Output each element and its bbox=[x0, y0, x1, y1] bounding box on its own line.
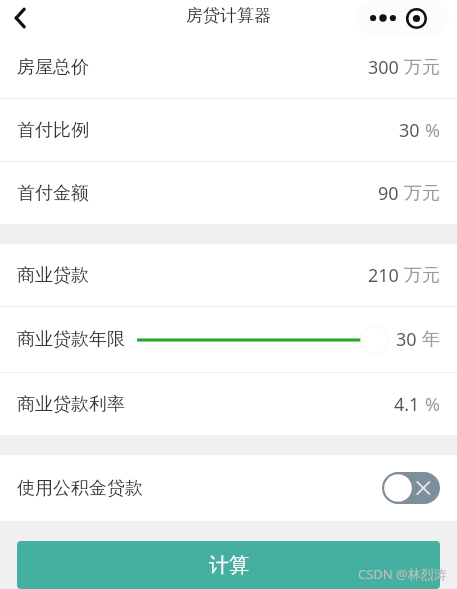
staticText: % bbox=[425, 118, 440, 143]
staticText: 210 bbox=[368, 263, 399, 288]
button[interactable]: 商业贷款利率 bbox=[0, 373, 457, 435]
staticText: % bbox=[425, 392, 440, 417]
button[interactable]: 计算 bbox=[17, 541, 440, 589]
staticText: 30 bbox=[396, 327, 417, 352]
button[interactable]: Close bbox=[406, 8, 427, 29]
staticText: 万元 bbox=[404, 264, 440, 287]
button[interactable]: More bbox=[368, 8, 398, 28]
staticText: 房屋总价 bbox=[17, 56, 89, 79]
button[interactable]: 商业贷款年限 bbox=[0, 307, 457, 372]
staticText: 首付金额 bbox=[17, 182, 89, 205]
button[interactable]: 房屋总价 bbox=[0, 36, 457, 98]
staticText: 30 bbox=[399, 118, 420, 143]
staticText: 万元 bbox=[404, 182, 440, 205]
staticText: 商业贷款 bbox=[17, 264, 89, 287]
staticText: 使用公积金贷款 bbox=[17, 477, 143, 500]
button[interactable]: 首付金额 bbox=[0, 162, 457, 224]
staticText: 计算 bbox=[209, 553, 249, 578]
button[interactable]: 首付比例 bbox=[0, 99, 457, 161]
staticText: 年 bbox=[422, 328, 440, 351]
staticText: CSDN @林烈涛 bbox=[358, 565, 447, 583]
button[interactable]: Use housing fund loan toggle bbox=[382, 472, 440, 504]
button[interactable]: 商业贷款 bbox=[0, 244, 457, 306]
button[interactable]: 使用公积金贷款 bbox=[0, 455, 457, 521]
button[interactable]: Loan years slider bbox=[137, 325, 388, 355]
button[interactable]: Back bbox=[4, 1, 38, 35]
staticText: 商业贷款年限 bbox=[17, 328, 125, 351]
staticText: 300 bbox=[368, 55, 399, 80]
staticText: 万元 bbox=[404, 56, 440, 79]
staticText: 房贷计算器 bbox=[186, 5, 271, 26]
staticText: 90 bbox=[378, 181, 399, 206]
staticText: 4.1 bbox=[394, 392, 420, 417]
staticText: 首付比例 bbox=[17, 119, 89, 142]
staticText: 商业贷款利率 bbox=[17, 393, 125, 416]
